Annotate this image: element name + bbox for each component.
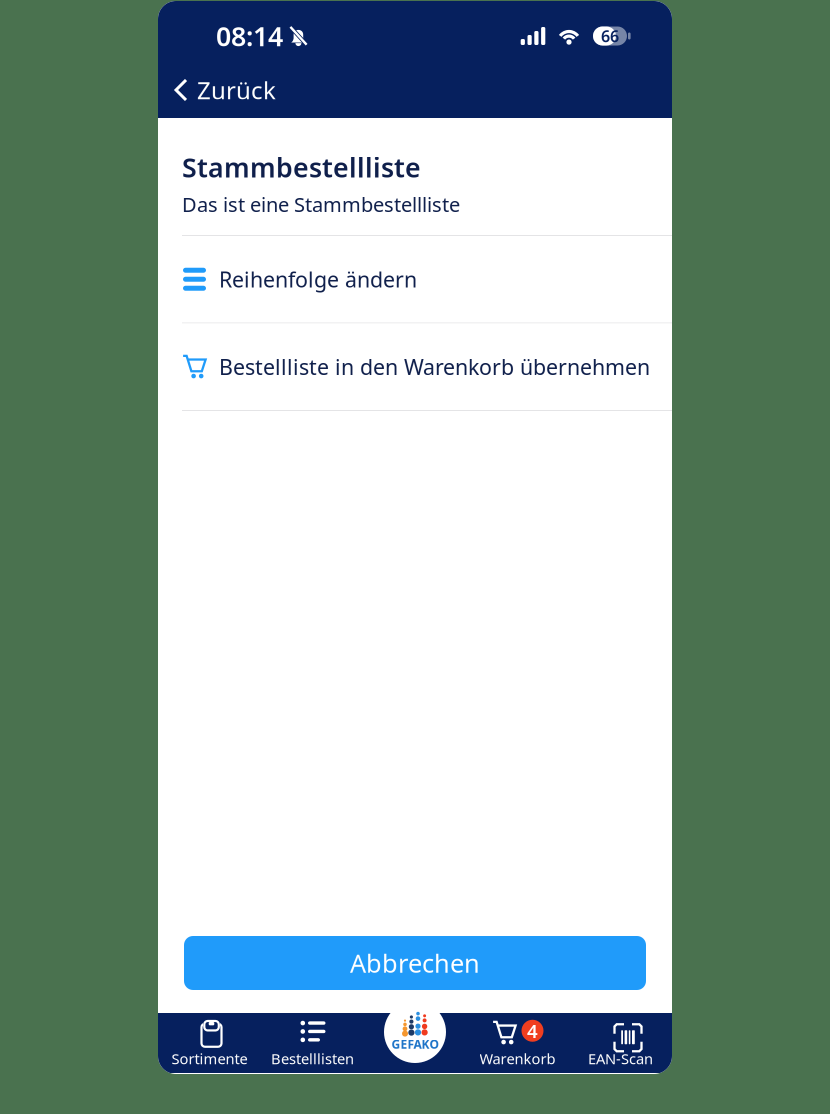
button[interactable]: GEFAKO	[384, 1001, 446, 1063]
staticText: Sortimente	[171, 1049, 247, 1068]
button[interactable]: Bestellliste in den Warenkorb übernehmen	[158, 323, 672, 411]
staticText: Zurück	[197, 74, 276, 106]
staticText: 66	[601, 25, 619, 47]
button[interactable]: Abbrechen	[184, 936, 646, 990]
staticText: Bestellliste in den Warenkorb übernehmen	[219, 353, 650, 381]
button[interactable]: EAN-Scan	[569, 1013, 672, 1073]
button[interactable]: 4	[466, 1013, 569, 1073]
staticText: Abbrechen	[350, 946, 480, 980]
staticText: GEFAKO	[391, 1036, 438, 1052]
staticText: Das ist eine Stammbestellliste	[182, 191, 460, 217]
staticText: 08:14	[216, 18, 283, 54]
button[interactable]: Sortimente	[158, 1013, 261, 1073]
staticText: Reihenfolge ändern	[219, 265, 417, 293]
button[interactable]: Bestelllisten	[261, 1013, 364, 1073]
button[interactable]: Zurück	[158, 71, 288, 118]
staticText: EAN-Scan	[588, 1049, 653, 1068]
staticText: 4	[527, 1018, 538, 1043]
staticText: Stammbestellliste	[182, 149, 421, 185]
button[interactable]: Reihenfolge ändern	[158, 236, 672, 323]
staticText: Warenkorb	[479, 1049, 555, 1068]
staticText: Bestelllisten	[271, 1049, 354, 1068]
button[interactable]: GEFAKO	[364, 1013, 466, 1073]
